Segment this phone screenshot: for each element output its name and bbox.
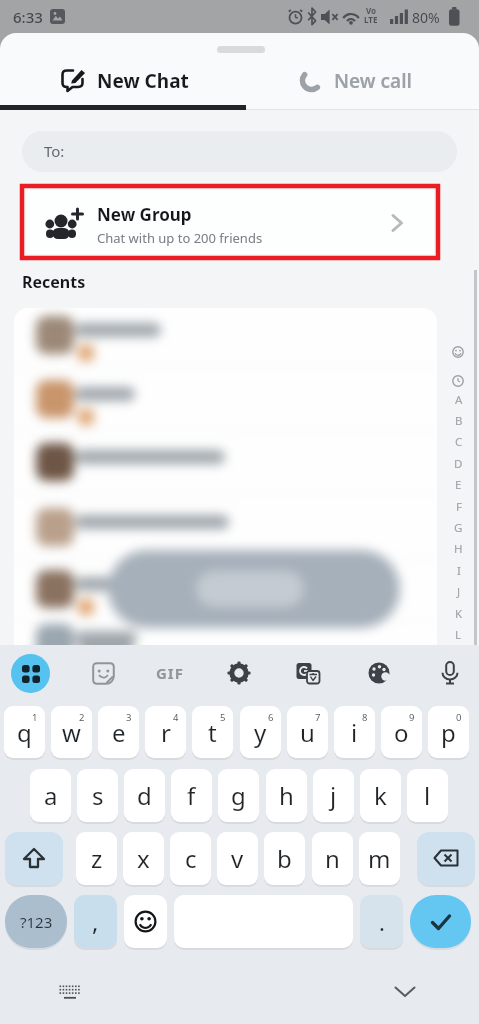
staticText: . (379, 907, 385, 937)
button[interactable]: To: (22, 131, 457, 172)
staticText: h (279, 779, 294, 812)
button[interactable]: x (123, 832, 164, 885)
staticText: 1 (32, 711, 38, 724)
staticText: n (325, 842, 340, 875)
staticText: b (277, 842, 292, 875)
button[interactable]: d (124, 769, 165, 822)
button[interactable] (124, 895, 167, 948)
button[interactable]: GIF (150, 656, 190, 690)
staticText: A (455, 392, 463, 408)
button[interactable] (86, 656, 120, 690)
button[interactable]: v (217, 832, 258, 885)
button[interactable]: j (313, 769, 354, 822)
button[interactable]: k (360, 769, 401, 822)
button[interactable]: w (51, 706, 92, 758)
button[interactable]: . (360, 895, 403, 948)
button[interactable]: t (192, 706, 233, 758)
staticText: u (300, 716, 315, 749)
staticText: f (187, 779, 196, 812)
staticText: g (231, 779, 246, 812)
staticText: Vo (366, 5, 377, 16)
button[interactable] (410, 895, 471, 948)
staticText: F (456, 499, 462, 515)
button[interactable]: q (4, 706, 45, 758)
button[interactable] (11, 654, 50, 693)
staticText: , (92, 905, 99, 938)
button[interactable]: m (359, 832, 400, 885)
button[interactable]: ?123 (5, 895, 67, 948)
staticText: p (441, 716, 456, 749)
staticText: 4 (173, 711, 179, 724)
staticText: s (92, 779, 104, 812)
button[interactable]: u (287, 706, 328, 758)
staticText: K (455, 606, 463, 622)
staticText: 2 (79, 711, 85, 724)
staticText: LTE (364, 14, 378, 25)
staticText: G (454, 520, 463, 536)
button[interactable]: y (240, 706, 281, 758)
button[interactable]: n (312, 832, 353, 885)
button[interactable]: New call (280, 58, 440, 102)
staticText: 80% (412, 8, 440, 27)
staticText: 7 (315, 711, 321, 724)
staticText: New Chat (97, 68, 189, 94)
button[interactable] (5, 832, 63, 885)
button[interactable]: h (266, 769, 307, 822)
button[interactable]: , (74, 895, 117, 948)
staticText: B (455, 413, 463, 429)
button[interactable] (26, 190, 434, 254)
staticText: c (185, 842, 197, 875)
staticText: Recents (22, 271, 86, 293)
staticText: 3 (126, 711, 132, 724)
button[interactable]: a (30, 769, 71, 822)
staticText: r (161, 716, 171, 749)
button[interactable]: s (77, 769, 118, 822)
button[interactable]: l (407, 769, 448, 822)
staticText: x (137, 842, 150, 875)
button[interactable]: g (218, 769, 259, 822)
staticText: D (454, 456, 463, 472)
staticText: H (454, 541, 463, 557)
button[interactable] (383, 976, 427, 1008)
button[interactable] (417, 832, 475, 885)
staticText: GIF (156, 663, 184, 683)
staticText: 5 (220, 711, 226, 724)
staticText: 0 (456, 711, 462, 724)
staticText: 6 (268, 711, 274, 724)
staticText: i (351, 716, 358, 749)
button[interactable] (433, 656, 467, 690)
button[interactable]: New Chat (40, 58, 240, 102)
button[interactable] (222, 656, 256, 690)
staticText: m (368, 842, 391, 875)
staticText: d (137, 779, 152, 812)
staticText: To: (44, 141, 65, 161)
button[interactable] (291, 656, 325, 690)
staticText: j (330, 779, 337, 812)
staticText: l (424, 779, 431, 812)
staticText: t (208, 716, 217, 749)
button[interactable] (362, 656, 396, 690)
button[interactable]: c (170, 832, 211, 885)
button[interactable]: e (98, 706, 139, 758)
staticText: a (44, 779, 58, 812)
button[interactable]: z (76, 832, 117, 885)
button[interactable]: p (428, 706, 469, 758)
staticText: E (455, 477, 462, 493)
staticText: Chat with up to 200 friends (97, 229, 263, 247)
button[interactable]: b (264, 832, 305, 885)
staticText: L (455, 627, 462, 643)
staticText: I (457, 563, 461, 579)
button[interactable]: r (145, 706, 186, 758)
staticText: o (394, 716, 409, 749)
button[interactable]: f (171, 769, 212, 822)
button[interactable] (48, 976, 92, 1008)
staticText: M (453, 648, 464, 664)
staticText: 9 (409, 711, 415, 724)
button[interactable]: i (334, 706, 375, 758)
staticText: 8 (362, 711, 368, 724)
staticText: z (91, 842, 103, 875)
staticText: 6:33 (13, 7, 43, 27)
staticText: v (231, 842, 244, 875)
button[interactable]: o (381, 706, 422, 758)
